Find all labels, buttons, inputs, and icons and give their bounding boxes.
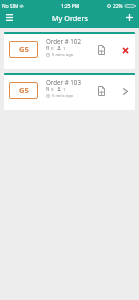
button[interactable]: Receipt [93, 40, 110, 60]
staticText: 0 [51, 86, 54, 92]
staticText: G5 [19, 85, 29, 95]
button[interactable]: Receipt [93, 81, 110, 101]
button[interactable]: G5 [4, 73, 135, 110]
staticText: G5 [19, 44, 29, 54]
staticText: 5 mins ago [52, 93, 74, 99]
staticText: 1 [63, 86, 66, 92]
button[interactable]: G5 [4, 32, 135, 69]
staticText: Order # 102 [46, 37, 81, 45]
button[interactable]: Open order [116, 81, 134, 101]
button[interactable]: Menu [1, 11, 17, 24]
staticText: 1:25 PM [61, 3, 80, 10]
staticText: 0 [51, 45, 54, 51]
button[interactable]: Add order [121, 11, 137, 24]
button[interactable]: Cancel order [116, 40, 134, 60]
staticText: Order # 103 [46, 78, 81, 86]
staticText: 1 [63, 45, 66, 51]
staticText: 5 mins ago [52, 52, 74, 58]
staticText: My Orders [52, 13, 88, 23]
staticText: 22% [113, 3, 123, 10]
staticText: No SIM [2, 3, 19, 10]
